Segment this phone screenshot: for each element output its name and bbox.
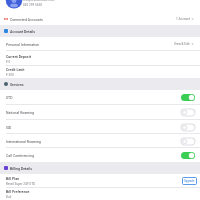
button[interactable]: STD bbox=[181, 94, 195, 101]
staticText: Bill Preference bbox=[6, 189, 30, 194]
button[interactable]: Call Conferencing bbox=[181, 152, 195, 159]
button[interactable]: National Roaming bbox=[0, 105, 200, 120]
button[interactable]: International Roaming bbox=[181, 138, 195, 145]
staticText: Retail Super 249 STD bbox=[6, 182, 35, 186]
button[interactable]: Upgrade bbox=[182, 177, 197, 185]
button[interactable]: Current Deposit bbox=[0, 51, 200, 66]
button[interactable]: ISD bbox=[181, 124, 195, 131]
staticText: test@testaccount.com bbox=[23, 0, 55, 2]
button[interactable]: National Roaming bbox=[181, 109, 195, 116]
staticText: View & Edit bbox=[174, 42, 190, 46]
staticText: Billing Details bbox=[10, 166, 32, 171]
button[interactable]: Services bbox=[0, 78, 200, 90]
staticText: International Roaming bbox=[6, 139, 41, 144]
staticText: Credit Limit bbox=[6, 67, 25, 72]
button[interactable]: Connected Accounts bbox=[0, 13, 200, 25]
button[interactable]: STD bbox=[0, 90, 200, 105]
staticText: Current Deposit bbox=[6, 54, 31, 59]
staticText: Call Conferencing bbox=[6, 153, 34, 158]
staticText: STD bbox=[6, 95, 13, 100]
staticText: Upgrade bbox=[184, 179, 195, 183]
button[interactable]: Bill Plan bbox=[0, 174, 200, 188]
staticText: 1 Account bbox=[176, 17, 190, 21]
staticText: National Roaming bbox=[6, 110, 35, 115]
staticText: Personal Information bbox=[6, 42, 40, 47]
staticText: Connected Accounts bbox=[10, 17, 43, 22]
button[interactable]: International Roaming bbox=[0, 134, 200, 148]
button[interactable]: Call Conferencing bbox=[0, 148, 200, 162]
staticText: 843 299 5658 bbox=[23, 3, 42, 7]
staticText: ₹ 0 bbox=[6, 60, 11, 64]
staticText: Account Details bbox=[10, 29, 36, 34]
button[interactable]: Account Details bbox=[0, 25, 200, 37]
button[interactable]: Credit Limit bbox=[0, 66, 200, 78]
button[interactable]: ISD bbox=[0, 120, 200, 134]
staticText: ₹ 500 bbox=[6, 73, 14, 77]
staticText: Bill Plan bbox=[6, 176, 20, 181]
button[interactable]: Profile photo bbox=[0, 0, 200, 13]
staticText: Duil bbox=[6, 195, 12, 199]
button[interactable]: Personal Information bbox=[0, 37, 200, 51]
staticText: ISD bbox=[6, 125, 12, 130]
button[interactable]: Billing Details bbox=[0, 162, 200, 174]
staticText: Services bbox=[10, 82, 24, 87]
button[interactable]: Bill Preference bbox=[0, 188, 200, 200]
